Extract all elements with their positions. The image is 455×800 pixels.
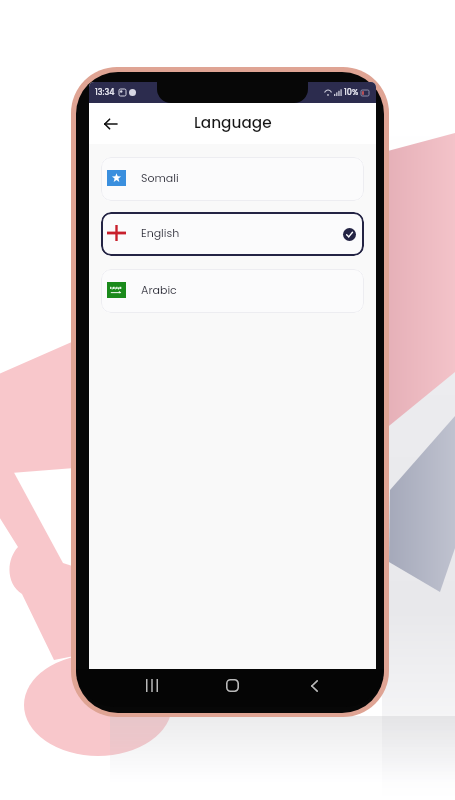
button[interactable]: Somali <box>101 157 364 201</box>
staticText: 13:34 <box>95 87 115 98</box>
staticText: Language <box>194 112 272 133</box>
button[interactable]: Recent apps <box>137 670 167 700</box>
staticText: Somali <box>141 170 179 185</box>
staticText: Arabic <box>141 282 177 297</box>
button[interactable]: Back <box>96 110 124 138</box>
staticText: 10% <box>344 87 359 98</box>
button[interactable]: Home <box>217 670 247 700</box>
button[interactable]: Back <box>299 671 329 701</box>
button[interactable]: Arabic <box>101 269 364 313</box>
button[interactable]: English <box>101 212 364 256</box>
staticText: English <box>141 225 180 240</box>
